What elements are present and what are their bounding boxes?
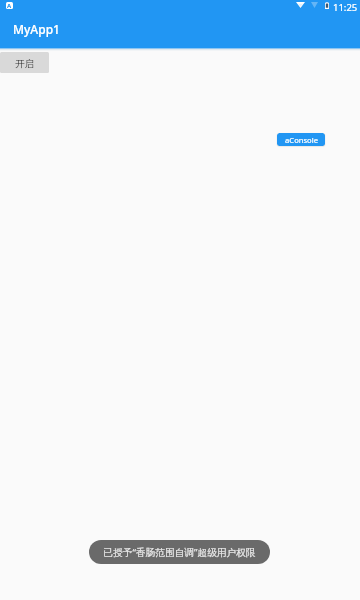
button[interactable]: 开启 <box>0 52 49 73</box>
staticText: aConsole <box>285 135 318 145</box>
button[interactable]: aConsole <box>277 133 325 146</box>
other: Mobile signal <box>311 2 318 8</box>
other: Wi-Fi <box>296 2 305 8</box>
staticText: MyApp1 <box>13 21 60 37</box>
staticText: 11:25 <box>333 1 358 14</box>
other: Battery <box>325 2 329 9</box>
other: App notification <box>6 2 13 9</box>
staticText: 已授予“香肠范围自调”超级用户权限 <box>103 546 256 559</box>
staticText: A <box>7 2 12 9</box>
staticText: 开启 <box>15 58 34 70</box>
